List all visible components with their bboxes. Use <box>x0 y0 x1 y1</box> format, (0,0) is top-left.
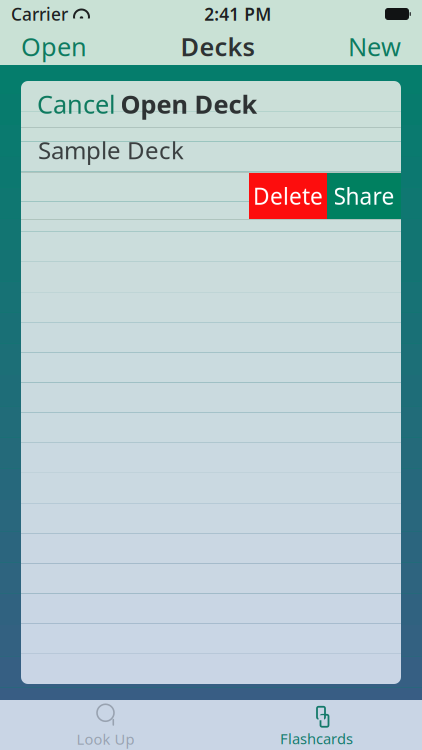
staticText: Share <box>333 181 394 211</box>
staticText: 2:41 PM <box>204 2 271 25</box>
button[interactable]: Flashcards <box>211 700 422 750</box>
staticText: Open <box>21 30 87 63</box>
staticText: New <box>348 30 401 63</box>
button[interactable]: New <box>334 24 415 69</box>
button[interactable]: Sample Deck <box>21 128 401 172</box>
staticText: Carrier <box>11 2 68 25</box>
staticText: Delete <box>253 181 323 211</box>
button[interactable]: Look Up <box>0 700 211 750</box>
staticText: Sample Deck <box>38 134 184 166</box>
staticText: Flashcards <box>280 729 353 748</box>
button[interactable]: Delete <box>249 173 327 219</box>
button[interactable]: Share <box>327 173 401 219</box>
staticText: Cancel <box>37 87 116 121</box>
button[interactable]: Open <box>7 24 101 69</box>
staticText: Decks <box>180 30 254 63</box>
staticText: Open Deck <box>120 87 257 121</box>
button[interactable]: Cancel <box>21 77 132 131</box>
staticText: Look Up <box>76 729 134 749</box>
